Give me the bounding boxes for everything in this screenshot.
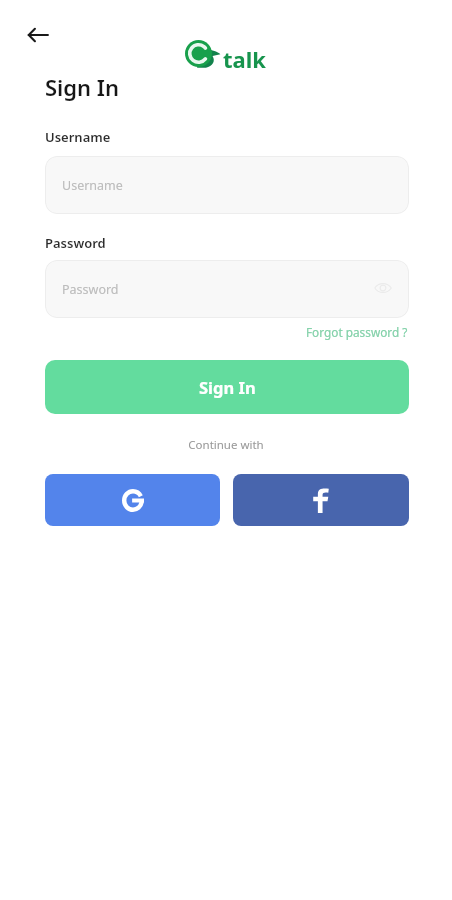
- staticText: Forgot password ?: [306, 324, 408, 340]
- staticText: talk: [223, 44, 266, 74]
- staticText: Username: [45, 128, 111, 146]
- staticText: Username: [62, 177, 123, 194]
- button[interactable]: Password: [45, 260, 409, 318]
- staticText: Password: [62, 281, 119, 298]
- staticText: Password: [45, 234, 106, 252]
- staticText: Sign In: [45, 72, 120, 102]
- button[interactable]: Continue with Facebook: [233, 474, 409, 526]
- button[interactable]: Show password: [374, 279, 394, 299]
- staticText: Sign In: [199, 376, 256, 398]
- button[interactable]: Sign In: [45, 360, 409, 414]
- button[interactable]: Back: [22, 19, 54, 51]
- button[interactable]: Username: [45, 156, 409, 214]
- button[interactable]: Forgot password ?: [306, 324, 408, 340]
- button[interactable]: Continue with Google: [45, 474, 220, 526]
- staticText: Continue with: [0, 437, 452, 453]
